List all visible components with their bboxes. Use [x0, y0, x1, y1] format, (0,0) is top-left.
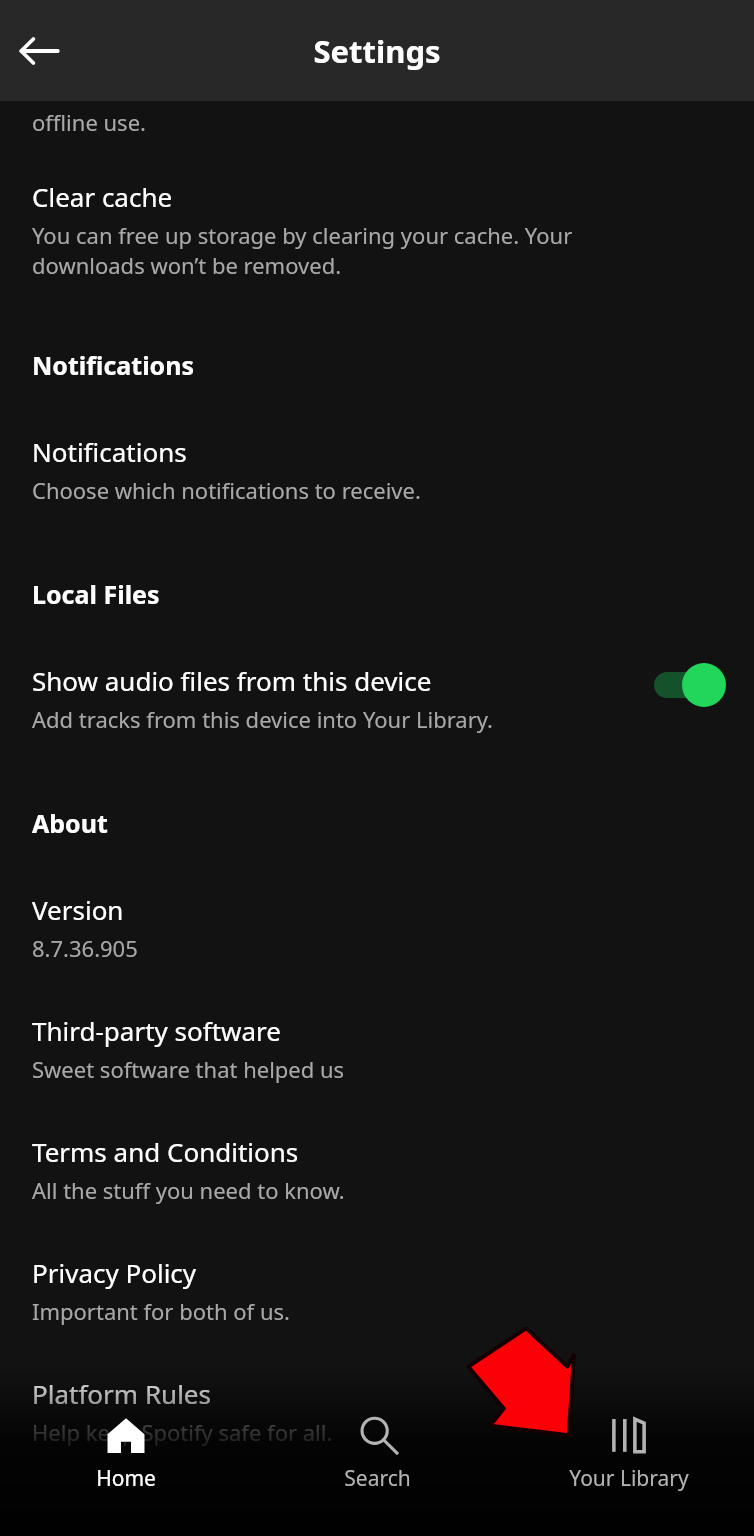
button[interactable]: Notifications: [0, 434, 754, 505]
staticText: Settings: [313, 30, 441, 72]
button[interactable]: Your Library: [503, 1400, 754, 1493]
staticText: Choose which notifications to receive.: [32, 475, 421, 505]
button[interactable]: Privacy Policy: [0, 1255, 754, 1326]
staticText: About: [32, 806, 108, 840]
staticText: 8.7.36.905: [32, 933, 138, 963]
staticText: Show audio files from this device: [32, 663, 432, 698]
staticText: Add tracks from this device into Your Li…: [32, 704, 494, 734]
button[interactable]: Search: [252, 1400, 503, 1493]
button[interactable]: Home: [0, 1400, 252, 1493]
button[interactable]: Show audio files from this device: [0, 663, 754, 734]
staticText: Terms and Conditions: [32, 1134, 299, 1169]
staticText: All the stuff you need to know.: [32, 1175, 345, 1205]
button[interactable]: Clear cache: [0, 179, 754, 280]
staticText: Your Library: [569, 1464, 689, 1493]
staticText: Third-party software: [32, 1013, 281, 1048]
button[interactable]: Version: [0, 892, 754, 963]
staticText: Privacy Policy: [32, 1255, 197, 1290]
staticText: Notifications: [32, 434, 187, 469]
staticText: Sweet software that helped us: [32, 1054, 345, 1084]
staticText: Home: [96, 1464, 156, 1493]
staticText: Notifications: [32, 348, 195, 382]
staticText: You can free up storage by clearing your…: [32, 220, 573, 280]
staticText: offline use.: [32, 107, 146, 137]
staticText: Platform Rules: [32, 1376, 211, 1411]
staticText: Search: [344, 1464, 411, 1493]
button[interactable]: Show audio files from this device toggle: [654, 663, 726, 707]
button[interactable]: Back: [8, 20, 70, 82]
staticText: Help keep Spotify safe for all.: [32, 1417, 333, 1447]
button[interactable]: Terms and Conditions: [0, 1134, 754, 1205]
button[interactable]: Third-party software: [0, 1013, 754, 1084]
staticText: Important for both of us.: [32, 1296, 290, 1326]
button[interactable]: Platform Rules: [0, 1376, 754, 1447]
staticText: Local Files: [32, 577, 160, 611]
staticText: Clear cache: [32, 179, 173, 214]
staticText: Version: [32, 892, 124, 927]
